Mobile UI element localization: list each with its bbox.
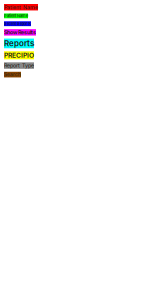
staticText: Search: [4, 72, 21, 77]
staticText: Patient Name: [4, 13, 28, 18]
staticText: Patient Name: [4, 4, 38, 10]
staticText: Show Results: [4, 29, 36, 36]
staticText: Recent Reports: [4, 21, 31, 26]
staticText: PRECIPIO: [4, 51, 34, 59]
staticText: Reports: [4, 39, 34, 48]
staticText: Report Type: [4, 62, 34, 69]
